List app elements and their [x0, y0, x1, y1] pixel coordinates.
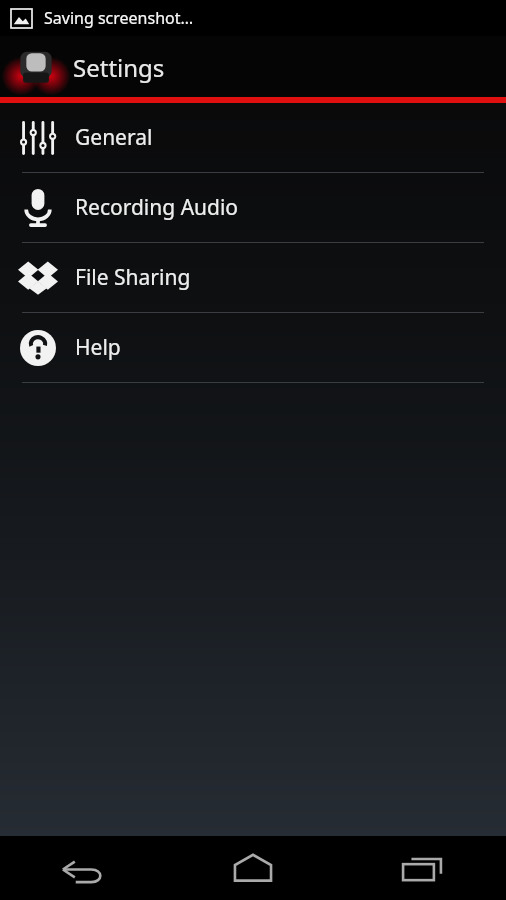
button[interactable]: Back — [0, 836, 168, 900]
staticText: Saving screenshot… — [44, 7, 194, 29]
button[interactable]: Help — [0, 313, 506, 382]
button[interactable]: General — [0, 103, 506, 172]
button[interactable]: Home — [168, 836, 337, 900]
staticText: Recording Audio — [75, 193, 239, 222]
button[interactable]: File Sharing — [0, 243, 506, 312]
button[interactable]: Recording Audio — [0, 173, 506, 242]
staticText: File Sharing — [75, 263, 191, 292]
staticText: Settings — [73, 51, 165, 84]
button[interactable]: Recent apps — [337, 836, 506, 900]
staticText: Help — [75, 333, 121, 362]
staticText: General — [75, 123, 153, 152]
